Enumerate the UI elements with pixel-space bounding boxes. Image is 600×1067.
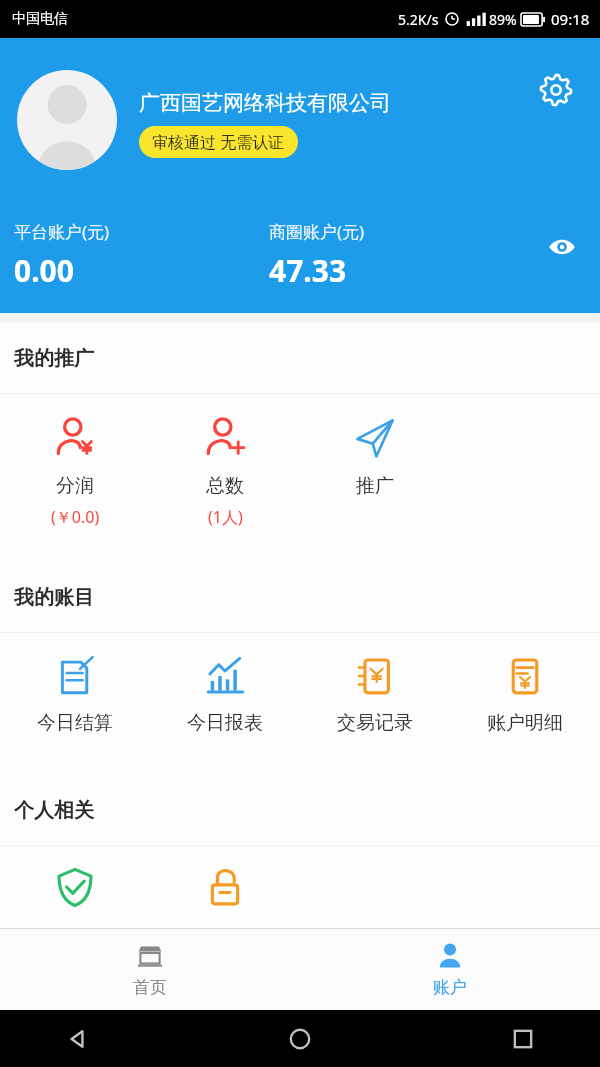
button[interactable]: 今日结算	[0, 633, 150, 775]
button[interactable]: 审核通过 无需认证	[139, 126, 298, 158]
button[interactable]: Recents	[506, 1022, 540, 1056]
staticText: 分润	[56, 474, 94, 498]
staticText: 平台账户(元)	[14, 220, 110, 243]
button[interactable]: 今日报表	[150, 633, 300, 775]
button[interactable]: 交易记录	[300, 633, 450, 775]
button[interactable]: 账户	[300, 929, 600, 1010]
staticText: 今日报表	[187, 711, 263, 735]
staticText: 首页	[133, 977, 167, 998]
staticText: 我的账目	[14, 585, 94, 610]
button[interactable]: Personal setting	[0, 846, 150, 928]
staticText: 个人相关	[14, 798, 94, 823]
button[interactable]: Back	[60, 1022, 94, 1056]
button[interactable]: Personal setting	[150, 846, 300, 928]
staticText: 47.33	[269, 250, 347, 291]
staticText: 总数	[206, 474, 244, 498]
button[interactable]: Home	[283, 1022, 317, 1056]
staticText: 交易记录	[337, 711, 413, 735]
staticText: 0.00	[14, 250, 74, 291]
staticText: 5.2K/s	[398, 10, 439, 29]
staticText: 账户明细	[487, 711, 563, 735]
staticText: 审核通过 无需认证	[152, 131, 285, 153]
button[interactable]: 账户明细	[450, 633, 600, 775]
staticText: (1人)	[208, 506, 243, 528]
staticText: 中国电信	[12, 10, 68, 28]
staticText: (￥0.0)	[51, 506, 100, 528]
staticText: 推广	[356, 474, 394, 498]
button[interactable]: 总数	[150, 394, 300, 562]
staticText: 商圈账户(元)	[269, 220, 365, 243]
staticText: 账户	[433, 977, 467, 998]
staticText: 今日结算	[37, 711, 113, 735]
staticText: 89%	[489, 10, 517, 29]
button[interactable]: Settings	[538, 72, 574, 108]
staticText: 广西国艺网络科技有限公司	[139, 90, 391, 116]
button[interactable]	[17, 70, 117, 170]
staticText: 我的推广	[14, 346, 94, 371]
button[interactable]: 推广	[300, 394, 450, 562]
staticText: 09:18	[551, 9, 590, 29]
button[interactable]: 分润	[0, 394, 150, 562]
button[interactable]: Toggle balance visibility	[546, 231, 578, 263]
button[interactable]: 首页	[0, 929, 300, 1010]
